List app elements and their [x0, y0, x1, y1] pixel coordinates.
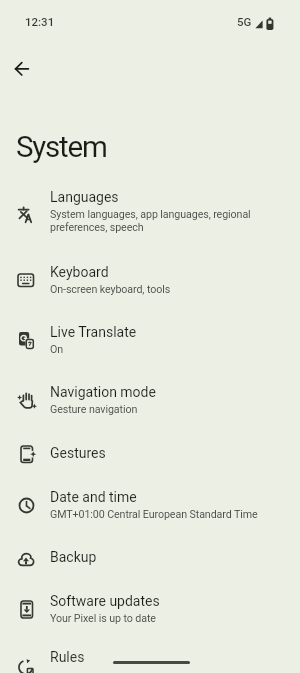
staticText: Backup [50, 549, 97, 565]
button[interactable]: Live Translate [0, 311, 300, 371]
staticText: Software updates [50, 593, 160, 609]
button[interactable]: Date and time [0, 474, 300, 534]
button[interactable]: Keyboard [0, 250, 300, 311]
staticText: Your Pixel is up to date [50, 612, 156, 625]
staticText: Keyboard [50, 264, 109, 280]
staticText: Gesture navigation [50, 403, 138, 416]
staticText: On-screen keyboard, tools [50, 283, 171, 296]
button[interactable] [6, 58, 46, 98]
button[interactable]: Backup [0, 534, 300, 578]
staticText: GMT+01:00 Central European Standard Time [50, 508, 258, 521]
staticText: Date and time [50, 489, 137, 505]
staticText: System languages, app languages, regiona… [50, 208, 251, 234]
button[interactable]: Languages [0, 172, 300, 250]
button[interactable]: Rules [0, 638, 300, 673]
staticText: Gestures [50, 445, 106, 461]
staticText: Languages [50, 189, 119, 205]
staticText: Rules [50, 649, 85, 665]
button[interactable]: Software updates [0, 578, 300, 638]
button[interactable]: Gestures [0, 431, 300, 474]
staticText: 12:31 [25, 15, 55, 28]
staticText: System [16, 130, 107, 165]
staticText: Navigation mode [50, 384, 156, 400]
button[interactable]: Navigation mode [0, 371, 300, 431]
staticText: 5G [237, 15, 252, 28]
staticText: Live Translate [50, 324, 137, 340]
staticText: On [50, 343, 64, 356]
